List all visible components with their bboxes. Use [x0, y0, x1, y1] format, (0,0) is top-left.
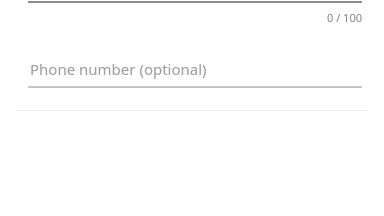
staticText: Phone number (optional) [30, 59, 207, 79]
button[interactable]: Phone number (optional) input [28, 52, 362, 88]
staticText: 0 / 100 [327, 10, 362, 25]
